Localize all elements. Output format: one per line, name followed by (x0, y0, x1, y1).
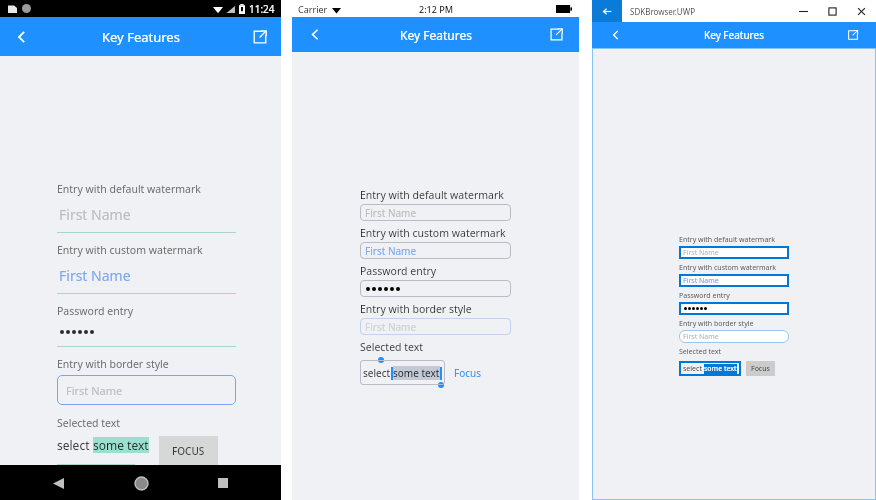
button[interactable]: Back (592, 0, 622, 22)
staticText: Selected text (360, 340, 424, 354)
staticText: First Name (59, 266, 131, 285)
button[interactable] (360, 280, 511, 297)
staticText: Entry with default watermark (57, 182, 201, 196)
button[interactable]: First Name (360, 204, 511, 221)
staticText: some text (93, 437, 149, 453)
staticText: SDKBrowser.UWP (630, 6, 695, 17)
staticText: Entry with custom watermark (57, 243, 203, 257)
button[interactable]: First Name (679, 330, 789, 343)
button[interactable]: First Name (679, 246, 789, 259)
staticText: Password entry (679, 291, 730, 301)
staticText: Password entry (360, 264, 437, 278)
button[interactable]: select (679, 361, 741, 376)
staticText: select (363, 366, 391, 380)
staticText: Selected text (679, 347, 722, 357)
staticText: Entry with default watermark (360, 188, 504, 202)
staticText: Entry with default watermark (679, 235, 775, 245)
staticText: Key Features (400, 27, 472, 43)
button[interactable]: Back (8, 23, 36, 51)
button[interactable]: min (789, 0, 818, 22)
staticText: Entry with custom watermark (360, 226, 506, 240)
staticText: First Name (59, 205, 131, 224)
button[interactable]: select (57, 437, 149, 453)
staticText: some text (704, 364, 737, 374)
button[interactable] (679, 302, 789, 315)
button[interactable]: Back (46, 471, 70, 495)
staticText: Focus (751, 364, 770, 374)
button[interactable]: Open externally (842, 24, 864, 46)
staticText: Carrier (298, 3, 328, 15)
staticText: Password entry (57, 304, 134, 318)
staticText: First Name (683, 332, 719, 342)
button[interactable]: Focus (454, 366, 482, 380)
button[interactable]: First Name (360, 318, 511, 335)
staticText: 11:24 (249, 2, 275, 16)
button[interactable]: First Name (360, 242, 511, 259)
staticText: FOCUS (172, 444, 205, 458)
button[interactable]: Back (604, 23, 628, 47)
staticText: First Name (683, 248, 719, 258)
button[interactable]: FOCUS (159, 436, 218, 465)
button[interactable]: Back (302, 21, 329, 48)
staticText: Key Features (704, 28, 764, 42)
button[interactable]: Home (129, 471, 153, 495)
staticText: Key Features (102, 28, 180, 46)
button[interactable]: close (847, 0, 876, 22)
staticText: select (57, 437, 93, 453)
button[interactable]: Open externally (544, 22, 569, 47)
staticText: First Name (683, 276, 719, 286)
staticText: First Name (66, 383, 123, 398)
staticText: Focus (454, 366, 482, 380)
staticText: Entry with border style (57, 357, 169, 371)
staticText: Entry with border style (679, 319, 754, 329)
button[interactable]: max (818, 0, 847, 22)
staticText: 2:12 PM (419, 3, 453, 15)
staticText: select (683, 364, 704, 374)
staticText: Entry with border style (360, 302, 472, 316)
staticText: Entry with custom watermark (679, 263, 777, 273)
staticText: Selected text (57, 416, 121, 430)
button[interactable]: Recents (211, 471, 235, 495)
button[interactable]: First Name (679, 274, 789, 287)
staticText: some text (393, 366, 440, 380)
staticText: First Name (365, 206, 417, 220)
staticText: First Name (365, 244, 417, 258)
button[interactable]: First Name (57, 375, 236, 405)
button[interactable]: select (360, 360, 445, 385)
staticText: First Name (365, 320, 417, 334)
button[interactable]: Focus (746, 361, 775, 376)
button[interactable]: Open externally (247, 24, 273, 50)
